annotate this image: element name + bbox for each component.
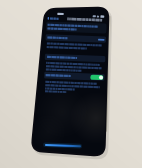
button[interactable]: Phone showing battery settings screen — [0, 0, 142, 168]
